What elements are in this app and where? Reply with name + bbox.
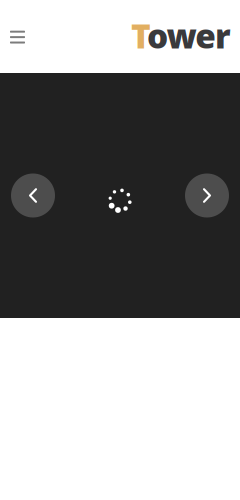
- staticText: T: [131, 13, 151, 58]
- staticText: ower: [147, 13, 231, 58]
- button[interactable]: Menu: [2, 14, 33, 58]
- button[interactable]: Previous slide: [11, 173, 55, 217]
- button[interactable]: Tower home: [131, 14, 240, 59]
- button[interactable]: Next slide: [185, 173, 229, 217]
